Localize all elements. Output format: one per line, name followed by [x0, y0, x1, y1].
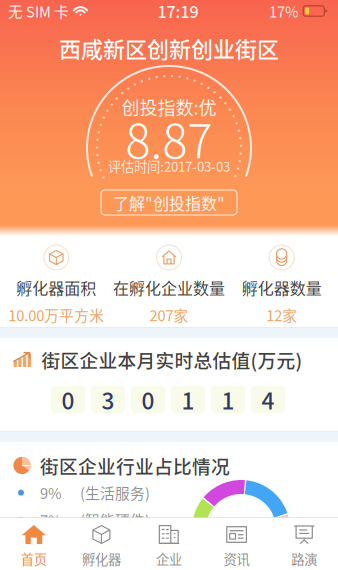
staticText: 8.87: [125, 104, 212, 172]
staticText: 10.00万平方米: [8, 304, 104, 325]
staticText: 17%: [269, 0, 299, 22]
staticText: 无 SIM 卡: [8, 0, 69, 22]
staticText: 3: [101, 383, 114, 416]
staticText: (智能硬件): [80, 509, 150, 530]
staticText: 孵化器数量: [242, 276, 322, 299]
staticText: 路演: [291, 549, 317, 568]
staticText: 在孵化企业数量: [113, 276, 225, 299]
staticText: 街区企业本月实时总估值(万元): [41, 346, 302, 373]
staticText: 7%: [40, 509, 62, 530]
staticText: 街区企业行业占比情况: [40, 452, 230, 479]
staticText: 资讯: [224, 549, 250, 568]
staticText: 9%: [40, 482, 62, 503]
staticText: 创投指数:优: [121, 94, 216, 120]
staticText: 4: [261, 383, 274, 416]
staticText: 评估时间:2017-03-03: [108, 156, 230, 176]
button[interactable]: 路演: [270, 518, 338, 570]
staticText: (生活服务): [80, 482, 150, 503]
staticText: 0: [61, 383, 74, 416]
button[interactable]: 资讯: [203, 518, 270, 570]
staticText: 1: [181, 383, 194, 416]
staticText: 207家: [149, 304, 188, 325]
button[interactable]: 企业: [135, 518, 203, 570]
staticText: 首页: [21, 549, 47, 568]
button[interactable]: 了解"创投指数": [101, 190, 237, 215]
button[interactable]: 首页: [0, 518, 68, 570]
staticText: 孵化器面积: [16, 276, 96, 299]
staticText: 孵化器: [82, 549, 121, 568]
staticText: 17:19: [157, 0, 198, 23]
staticText: 西咸新区创新创业街区: [59, 32, 279, 64]
staticText: 了解"创投指数": [113, 191, 225, 214]
button[interactable]: 孵化器: [68, 518, 135, 570]
staticText: 1: [221, 383, 234, 416]
staticText: 企业: [156, 549, 182, 568]
staticText: 12家: [266, 304, 297, 325]
staticText: 0: [141, 383, 154, 416]
